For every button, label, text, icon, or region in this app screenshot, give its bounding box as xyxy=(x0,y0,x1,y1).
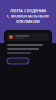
staticText: ОТКЛИКОМ xyxy=(16,19,40,24)
staticText: ЛЕНТА СВЕДЕНИЙ xyxy=(10,8,46,13)
button[interactable]: Ответить xyxy=(7,58,29,64)
staticText: С МОМЕНТАЛЬНЫМ xyxy=(7,13,49,19)
